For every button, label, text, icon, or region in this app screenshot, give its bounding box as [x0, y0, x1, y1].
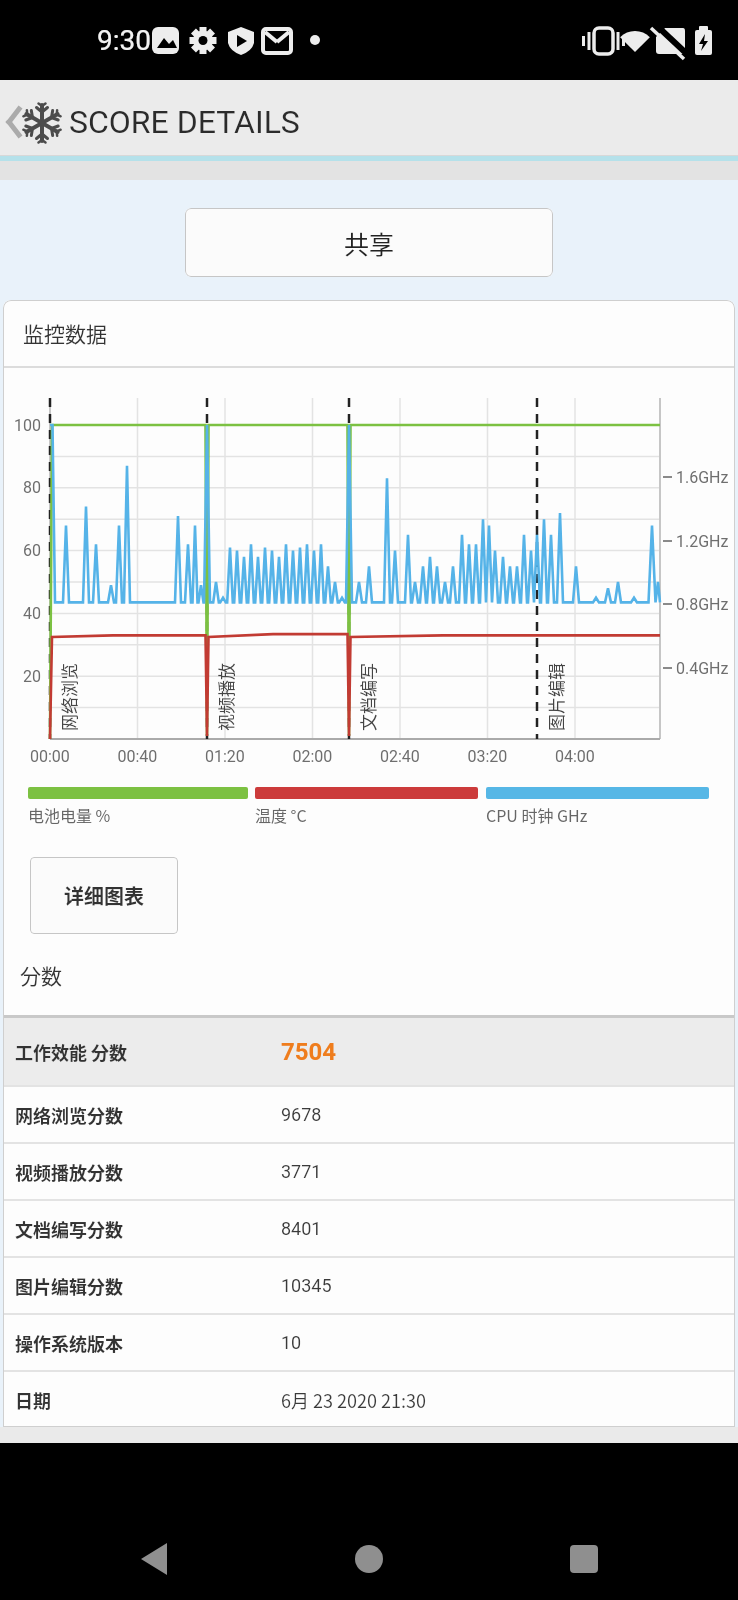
button[interactable]: 视频播放分数	[3, 1144, 735, 1199]
staticText: 文档编写分数	[15, 1216, 123, 1242]
button[interactable]: 图片编辑分数	[3, 1258, 735, 1313]
staticText: 日期	[15, 1387, 51, 1413]
staticText: 6月 23 2020 21:30	[281, 1387, 426, 1413]
staticText: 共享	[344, 225, 395, 261]
staticText: 网络浏览分数	[15, 1102, 123, 1128]
button[interactable]: 操作系统版本	[3, 1315, 735, 1370]
staticText: CPU 时钟 GHz	[486, 803, 588, 826]
staticText: 操作系统版本	[15, 1330, 123, 1356]
button[interactable]: 日期	[3, 1372, 735, 1427]
button[interactable]	[0, 80, 62, 155]
staticText: 3771	[281, 1161, 322, 1182]
staticText: 监控数据	[23, 318, 107, 348]
button[interactable]: 网络浏览分数	[3, 1087, 735, 1142]
button[interactable]: 工作效能 分数	[3, 1018, 735, 1085]
button[interactable]: 详细图表	[30, 857, 178, 934]
staticText: 详细图表	[64, 881, 144, 910]
staticText: 温度 °C	[255, 803, 307, 826]
staticText: SCORE DETAILS	[69, 103, 300, 141]
staticText: 视频播放分数	[15, 1159, 123, 1185]
button[interactable]: 文档编写分数	[3, 1201, 735, 1256]
staticText: 10345	[281, 1275, 332, 1296]
staticText: 9678	[281, 1104, 322, 1125]
staticText: 10	[281, 1332, 302, 1353]
staticText: 图片编辑分数	[15, 1273, 123, 1299]
button[interactable]: 共享	[185, 208, 553, 277]
staticText: 电池电量 %	[28, 803, 111, 826]
staticText: 7504	[281, 1038, 337, 1066]
staticText: 8401	[281, 1218, 322, 1239]
staticText: 工作效能 分数	[15, 1039, 128, 1065]
staticText: 分数	[20, 960, 62, 990]
staticText: 9:30	[97, 24, 151, 57]
